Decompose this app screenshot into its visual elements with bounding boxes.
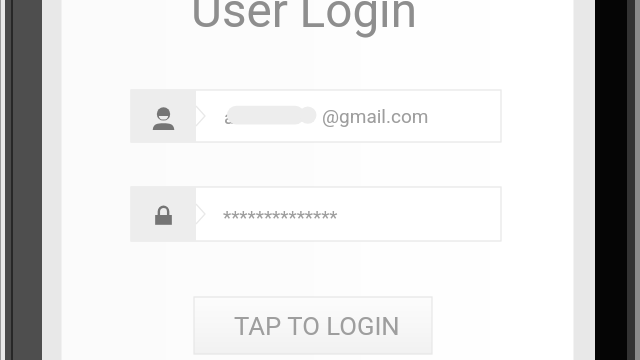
staticText: a	[224, 106, 235, 128]
staticText: User Login	[104, 0, 504, 53]
staticText: TAP TO LOGIN	[234, 311, 400, 341]
staticText: @gmail.com	[322, 105, 429, 127]
button[interactable]: Email address	[131, 90, 501, 142]
staticText: **************	[223, 206, 338, 228]
button[interactable]: Password	[131, 187, 501, 241]
button[interactable]: TAP TO LOGIN	[194, 297, 432, 354]
